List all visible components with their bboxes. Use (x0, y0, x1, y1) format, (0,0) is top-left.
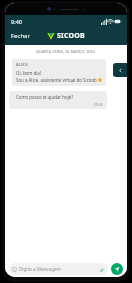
staticText: Sou a Alice, assistente virtual do Sicoo… (16, 77, 97, 83)
staticText: Fechar (11, 32, 30, 40)
staticText: Oi, bom dia! (16, 70, 41, 76)
staticText: SICOOB (57, 31, 85, 41)
button[interactable]: Anexar (97, 265, 105, 273)
staticText: QUARTA-FEIRA, 30 MARÇO, 2022 (36, 49, 96, 54)
button[interactable]: Enviar (111, 263, 123, 275)
button[interactable]: Expandir (113, 63, 127, 77)
button[interactable]: Digite a Mensagem (9, 263, 108, 275)
staticText: 09:36 (94, 102, 103, 107)
staticText: 9:40 (11, 18, 22, 25)
staticText: Digite a Mensagem (19, 266, 61, 272)
staticText: Como posso te ajudar hoje? (16, 94, 74, 100)
staticText: ALICE (16, 62, 28, 67)
button[interactable]: Fechar (5, 27, 36, 45)
